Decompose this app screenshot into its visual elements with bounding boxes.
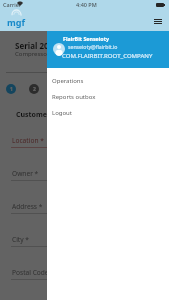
staticText: 4:40 PM bbox=[76, 1, 97, 8]
staticText: FlairBit Senseioty bbox=[63, 35, 109, 42]
staticText: Location * bbox=[12, 136, 44, 145]
staticText: Postal Code * bbox=[12, 268, 54, 277]
staticText: Serial 2019-0001 bbox=[15, 40, 79, 51]
button[interactable]: Reports outbox bbox=[47, 89, 169, 105]
staticText: Logout bbox=[52, 109, 72, 117]
staticText: Compressor XYZ bbox=[15, 50, 62, 58]
staticText: COM.FLAIRBIT.ROOT_COMPANY bbox=[62, 52, 153, 60]
staticText: senseioty@flairbit.io bbox=[68, 43, 118, 50]
staticText: Operations bbox=[52, 77, 84, 85]
staticText: City * bbox=[12, 235, 29, 244]
staticText: 2 bbox=[33, 86, 36, 93]
button[interactable]: Operations bbox=[47, 73, 169, 89]
staticText: mgf bbox=[7, 16, 25, 28]
staticText: Customer data bbox=[16, 110, 68, 120]
button[interactable]: Open navigation menu bbox=[150, 13, 165, 30]
staticText: Carrier bbox=[3, 1, 22, 8]
staticText: Reports outbox bbox=[52, 93, 96, 101]
button[interactable]: Logout bbox=[47, 105, 169, 121]
staticText: Owner * bbox=[12, 169, 39, 178]
staticText: Address * bbox=[12, 202, 43, 211]
staticText: 1 bbox=[10, 86, 13, 93]
